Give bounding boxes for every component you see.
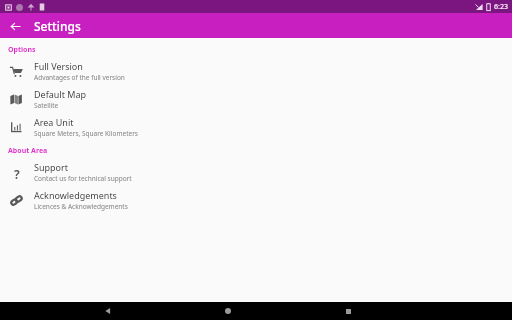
staticText: Options [8, 45, 36, 55]
staticText: Settings [34, 18, 81, 34]
staticText: About Area [8, 146, 48, 156]
button[interactable]: ? [0, 158, 512, 186]
button[interactable]: Area Unit [0, 113, 512, 141]
staticText: 6:23 [494, 2, 508, 12]
staticText: Licences & Acknowledgements [34, 202, 128, 211]
button[interactable]: Default Map [0, 85, 512, 113]
staticText: Advantages of the full version [34, 73, 125, 82]
staticText: Area Unit [34, 116, 74, 128]
staticText: ? [14, 166, 20, 179]
button[interactable]: Back [4, 15, 26, 37]
staticText: Default Map [34, 88, 87, 100]
button[interactable]: Acknowledgements [0, 186, 512, 214]
staticText: Square Meters, Square Kilometers [34, 129, 138, 138]
button[interactable]: Back [95, 302, 121, 320]
staticText: Acknowledgements [34, 189, 117, 201]
staticText: Satellite [34, 101, 59, 110]
staticText: Full Version [34, 60, 83, 72]
staticText: Contact us for technical support [34, 174, 132, 183]
button[interactable]: Home [215, 302, 241, 320]
button[interactable]: Full Version [0, 57, 512, 85]
staticText: Support [34, 161, 68, 173]
button[interactable]: Recent apps [335, 302, 361, 320]
